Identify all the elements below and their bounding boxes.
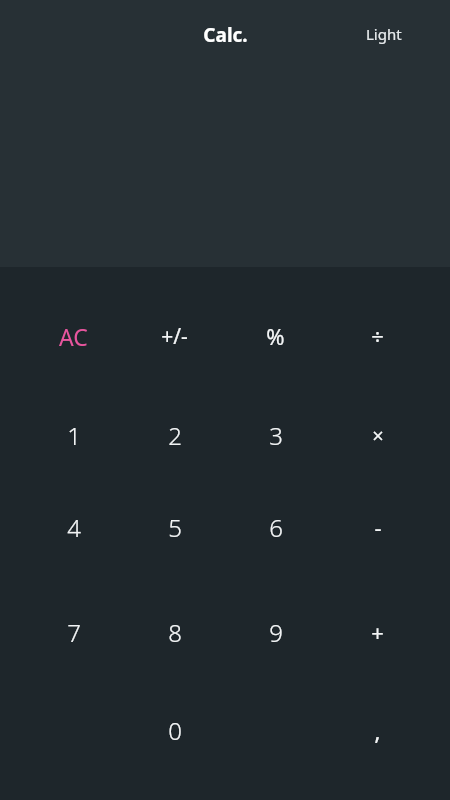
button[interactable]: 1 (23, 389, 124, 481)
button[interactable]: Plus (327, 586, 428, 678)
button[interactable]: 7 (23, 586, 124, 678)
button[interactable]: 5 (124, 481, 225, 573)
staticText: 7 (67, 616, 81, 649)
staticText: + (371, 617, 384, 647)
button[interactable]: Toggle sign (124, 290, 225, 382)
staticText: AC (59, 321, 88, 352)
button[interactable]: Minus (327, 481, 428, 573)
staticText: 4 (67, 511, 81, 544)
staticText: +/- (161, 322, 188, 351)
button[interactable]: 3 (225, 389, 326, 481)
staticText: 8 (168, 616, 182, 649)
button[interactable]: 8 (124, 586, 225, 678)
button[interactable]: 9 (225, 586, 326, 678)
staticText: 3 (269, 419, 283, 452)
button[interactable]: Calc. (203, 22, 248, 48)
staticText: , (374, 714, 381, 747)
button[interactable]: All clear (23, 290, 124, 382)
staticText: % (266, 321, 285, 351)
button[interactable]: 2 (124, 389, 225, 481)
button[interactable]: 0 (124, 684, 225, 776)
button[interactable]: Multiply (327, 389, 428, 481)
button[interactable]: 4 (23, 481, 124, 573)
staticText: 5 (168, 511, 182, 544)
staticText: 0 (168, 714, 182, 747)
button[interactable]: Divide (327, 290, 428, 382)
button[interactable]: Light (366, 24, 402, 44)
staticText: 2 (168, 419, 182, 452)
staticText: 9 (269, 616, 283, 649)
staticText: × (372, 422, 384, 449)
button[interactable]: 6 (225, 481, 326, 573)
button[interactable]: Percent (225, 290, 326, 382)
button[interactable]: Decimal separator (327, 684, 428, 776)
staticText: 6 (269, 511, 283, 544)
staticText: ÷ (371, 321, 384, 351)
staticText: - (374, 512, 382, 542)
staticText: 1 (67, 419, 81, 452)
